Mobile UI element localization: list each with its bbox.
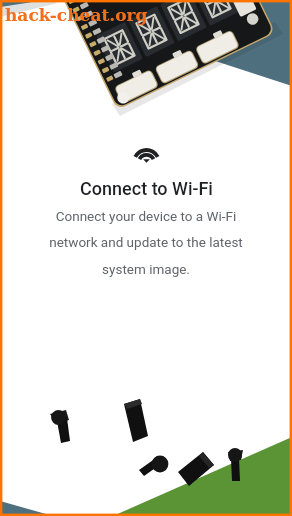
staticText: Connect your device to a Wi-Fi network a… (46, 208, 246, 278)
staticText: Connect to Wi-Fi (80, 178, 213, 199)
staticText: hack-cheat.org (5, 5, 148, 25)
